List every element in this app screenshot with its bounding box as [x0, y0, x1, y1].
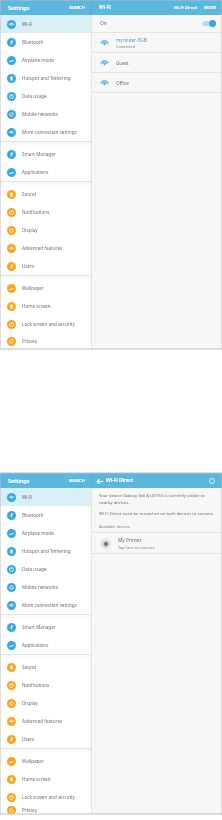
button[interactable]: Wallpaper — [0, 752, 91, 770]
button[interactable]: Office — [92, 73, 222, 92]
button[interactable]: Lock screen and security — [0, 315, 91, 333]
button[interactable]: Airplane mode — [0, 524, 91, 542]
button[interactable]: Settings — [0, 0, 91, 15]
staticText: Lock screen and security — [22, 794, 75, 800]
button[interactable]: Advanced features — [0, 712, 91, 730]
button[interactable]: Privacy — [0, 333, 91, 349]
staticText: Display — [22, 700, 38, 706]
staticText: Applications — [22, 169, 49, 175]
staticText: myrouter-5GB — [116, 37, 147, 43]
staticText: Wallpaper — [22, 285, 44, 291]
button[interactable]: Display — [0, 694, 91, 712]
button[interactable]: Mobile networks — [0, 578, 91, 596]
staticText: Privacy — [22, 807, 38, 813]
button[interactable]: Home screen — [0, 770, 91, 788]
staticText: On — [100, 20, 107, 27]
button[interactable]: SEARCH — [69, 5, 85, 11]
staticText: More connection settings — [22, 602, 77, 608]
button[interactable]: Smart Manager — [0, 145, 91, 163]
staticText: Airplane mode — [22, 530, 54, 536]
button[interactable]: Guest — [92, 53, 222, 72]
button[interactable]: Users — [0, 257, 91, 275]
button[interactable]: Smart Manager — [0, 618, 91, 636]
staticText: Settings — [8, 477, 30, 484]
button[interactable]: Users — [0, 730, 91, 748]
staticText: Bluetooth — [22, 512, 44, 518]
staticText: Privacy — [22, 338, 38, 344]
staticText: Sound — [22, 191, 36, 197]
staticText: Advanced features — [22, 718, 63, 724]
staticText: SEARCH — [69, 5, 85, 11]
button[interactable]: Privacy — [0, 806, 91, 814]
staticText: Office — [116, 80, 129, 86]
staticText: Wi-Fi Direct — [106, 477, 134, 484]
staticText: Airplane mode — [22, 57, 54, 63]
button[interactable]: Data usage — [0, 560, 91, 578]
button[interactable]: myrouter-5GB — [92, 33, 222, 52]
button[interactable]: On — [92, 15, 222, 32]
button[interactable]: More connection settings — [0, 123, 91, 141]
staticText: Home screen — [22, 303, 51, 309]
button[interactable]: More connection settings — [0, 596, 91, 614]
button[interactable]: Lock screen and security — [0, 788, 91, 806]
button[interactable]: Applications — [0, 163, 91, 181]
staticText: Guest — [116, 60, 129, 66]
button[interactable]: Notifications — [0, 676, 91, 694]
staticText: Wi-Fi Direct — [174, 5, 197, 11]
button[interactable]: Bluetooth — [0, 33, 91, 51]
staticText: Advanced features — [22, 245, 63, 251]
staticText: Users — [22, 736, 35, 742]
button[interactable]: Wallpaper — [0, 279, 91, 297]
staticText: Mobile networks — [22, 111, 58, 117]
staticText: Connected — [116, 44, 136, 49]
staticText: Wi-Fi — [22, 494, 33, 500]
staticText: Wallpaper — [22, 758, 44, 764]
staticText: Wi-Fi Direct must be turned on on both d… — [99, 511, 215, 517]
button[interactable]: Mobile networks — [0, 105, 91, 123]
staticText: Available devices — [99, 524, 130, 529]
staticText: Notifications — [22, 209, 50, 215]
staticText: Tap here to connect. — [118, 545, 156, 550]
button[interactable]: Advanced features — [0, 239, 91, 257]
button[interactable]: Back — [92, 474, 106, 488]
staticText: More connection settings — [22, 129, 77, 135]
staticText: Hotspot and Tethering — [22, 548, 71, 554]
staticText: Users — [22, 263, 35, 269]
button[interactable]: Applications — [0, 636, 91, 654]
staticText: Sound — [22, 664, 36, 670]
button[interactable]: My Printer — [92, 533, 222, 553]
button[interactable]: Wi-Fi — [0, 15, 91, 33]
staticText: Mobile networks — [22, 584, 58, 590]
staticText: SEARCH — [69, 478, 85, 484]
button[interactable]: Scan — [205, 474, 219, 488]
staticText: Applications — [22, 642, 49, 648]
staticText: My Printer — [118, 537, 142, 544]
staticText: Data usage — [22, 93, 47, 99]
button[interactable]: Display — [0, 221, 91, 239]
staticText: Hotspot and Tethering — [22, 75, 71, 81]
staticText: Your device (Galaxy Tab A (2016)) is cur… — [99, 493, 215, 505]
staticText: Wi-Fi — [22, 21, 33, 27]
button[interactable]: Airplane mode — [0, 51, 91, 69]
button[interactable]: Notifications — [0, 203, 91, 221]
button[interactable]: Wi-Fi — [0, 488, 91, 506]
button[interactable]: Sound — [0, 185, 91, 203]
button[interactable]: Bluetooth — [0, 506, 91, 524]
staticText: Notifications — [22, 682, 50, 688]
button[interactable]: Settings — [0, 473, 91, 488]
staticText: Wi-Fi — [99, 4, 111, 11]
button[interactable]: Hotspot and Tethering — [0, 69, 91, 87]
button[interactable]: Sound — [0, 658, 91, 676]
staticText: Display — [22, 227, 38, 233]
staticText: Lock screen and security — [22, 321, 75, 327]
staticText: MORE — [204, 5, 217, 11]
button[interactable]: Wi-Fi Direct — [174, 5, 197, 11]
staticText: Home screen — [22, 776, 51, 782]
button[interactable]: MORE — [204, 5, 217, 11]
button[interactable]: SEARCH — [69, 478, 85, 484]
button[interactable]: Hotspot and Tethering — [0, 542, 91, 560]
staticText: Data usage — [22, 566, 47, 572]
staticText: Bluetooth — [22, 39, 44, 45]
button[interactable]: Data usage — [0, 87, 91, 105]
button[interactable]: Home screen — [0, 297, 91, 315]
